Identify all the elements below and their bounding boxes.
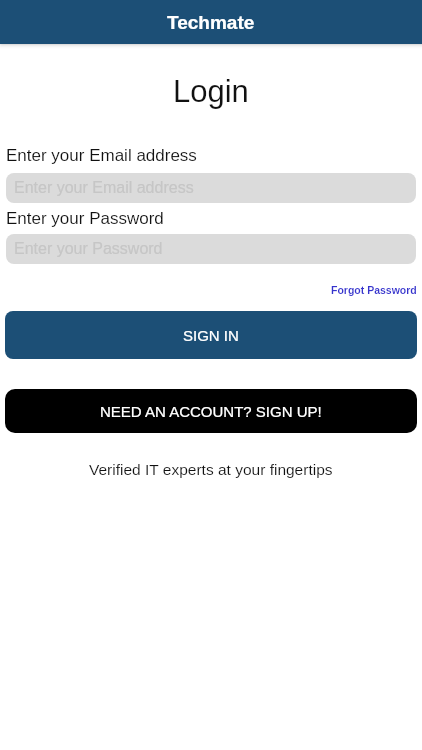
staticText: SIGN IN: [183, 327, 239, 344]
staticText: Techmate: [167, 12, 255, 33]
staticText: Forgot Password: [331, 284, 417, 296]
button[interactable]: NEED AN ACCOUNT? SIGN UP!: [5, 389, 417, 433]
button[interactable]: Forgot Password: [331, 284, 417, 296]
staticText: Login: [173, 74, 249, 109]
button[interactable]: Enter your Password: [6, 234, 416, 264]
staticText: Enter your Password: [6, 209, 164, 228]
button[interactable]: Enter your Email address: [6, 173, 416, 203]
button[interactable]: SIGN IN: [5, 311, 417, 359]
staticText: Enter your Password: [14, 240, 163, 258]
staticText: Enter your Email address: [14, 179, 194, 197]
staticText: Enter your Email address: [6, 146, 197, 165]
staticText: Verified IT experts at your fingertips: [89, 461, 333, 478]
staticText: NEED AN ACCOUNT? SIGN UP!: [100, 403, 322, 420]
